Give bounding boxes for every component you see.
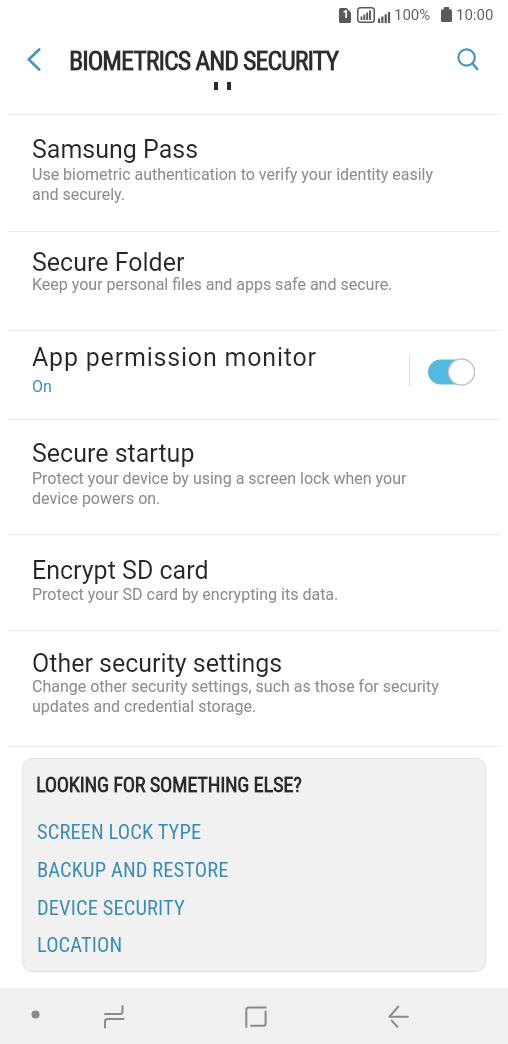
staticText: BACKUP AND RESTORE	[37, 858, 229, 882]
button[interactable]	[20, 999, 50, 1029]
staticText: DEVICE SECURITY	[37, 896, 185, 920]
button[interactable]	[428, 359, 475, 385]
staticText: LOCATION	[37, 933, 123, 957]
staticText: Other security settings	[32, 649, 283, 678]
button[interactable]	[23, 888, 485, 926]
staticText: Use biometric authentication to verify y…	[32, 165, 434, 204]
button[interactable]	[0, 631, 508, 746]
button[interactable]	[0, 420, 508, 534]
staticText: Encrypt SD card	[32, 556, 209, 585]
staticText: Protect your device by using a screen lo…	[32, 469, 407, 508]
button[interactable]	[23, 850, 485, 888]
staticText: Keep your personal files and apps safe a…	[32, 275, 393, 294]
staticText: Secure startup	[32, 439, 195, 468]
staticText: App permission monitor	[32, 343, 317, 372]
staticText: Secure Folder	[32, 248, 185, 277]
staticText: Protect your SD card by encrypting its d…	[32, 585, 339, 604]
button[interactable]	[0, 115, 508, 231]
staticText: Samsung Pass	[32, 135, 199, 164]
button[interactable]	[10, 36, 60, 82]
staticText: SCREEN LOCK TYPE	[37, 820, 202, 844]
staticText: Change other security settings, such as …	[32, 677, 439, 716]
staticText: BIOMETRICS AND SECURITY	[69, 46, 339, 76]
button[interactable]	[229, 990, 281, 1042]
button[interactable]	[23, 812, 485, 850]
button[interactable]	[0, 331, 508, 419]
staticText: 10:00	[456, 6, 494, 24]
button[interactable]	[88, 990, 140, 1042]
button[interactable]	[0, 232, 508, 330]
button[interactable]	[444, 36, 494, 82]
staticText: 100%	[394, 6, 431, 24]
button[interactable]	[372, 990, 424, 1042]
button[interactable]	[0, 535, 508, 630]
staticText: LOOKING FOR SOMETHING ELSE?	[36, 773, 302, 797]
button[interactable]	[23, 926, 485, 964]
staticText: On	[32, 377, 52, 396]
staticText: 1	[343, 9, 349, 21]
